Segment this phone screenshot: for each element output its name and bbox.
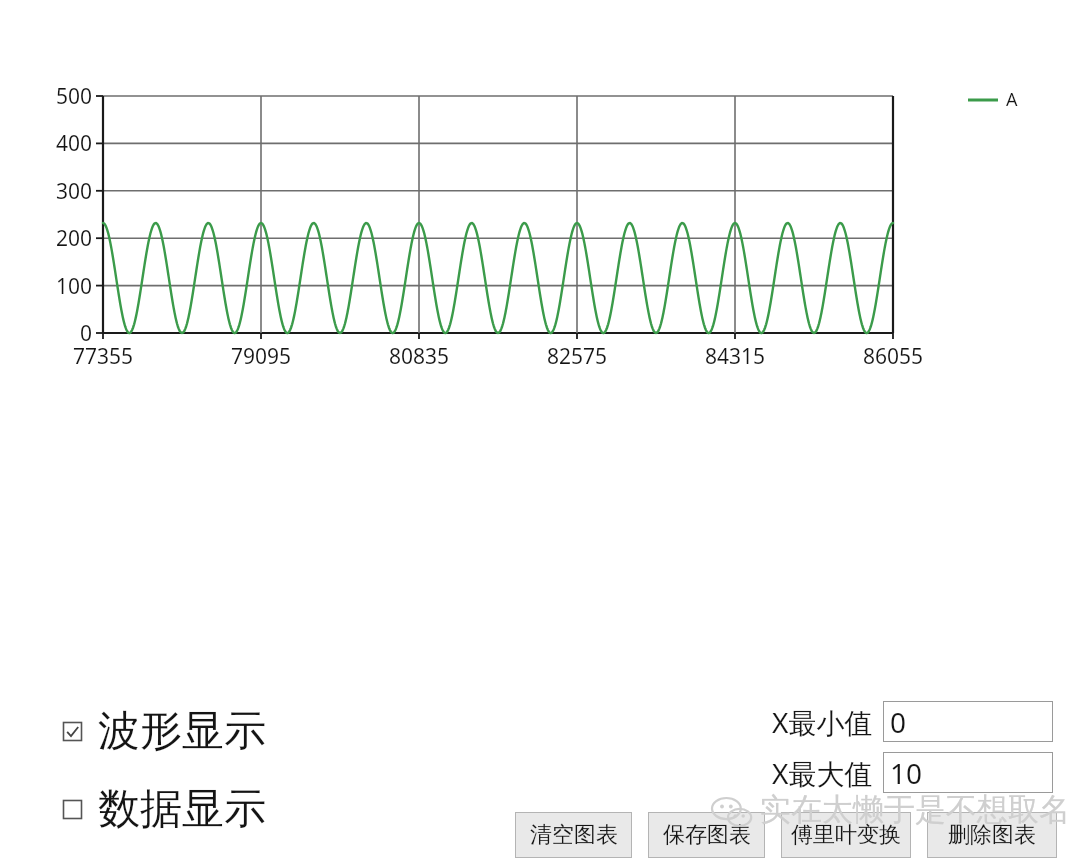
button[interactable]: 傅里叶变换	[781, 812, 911, 858]
staticText: 0	[890, 703, 907, 741]
staticText: X最大值	[772, 754, 873, 792]
staticText: 数据显示	[98, 783, 266, 836]
button[interactable]: 0	[883, 701, 1053, 742]
staticText: 波形显示	[98, 705, 266, 758]
button[interactable]: 保存图表	[648, 812, 765, 858]
staticText: 删除图表	[948, 821, 1036, 849]
staticText: 80835	[359, 342, 479, 371]
staticText: 实在太懒于是不想取名	[760, 790, 1070, 829]
staticText: 77355	[43, 342, 163, 371]
staticText: 300	[26, 177, 92, 206]
staticText: 清空图表	[530, 821, 618, 849]
staticText: 200	[26, 224, 92, 253]
button[interactable]: 波形显示	[63, 705, 266, 758]
staticText: 86055	[833, 342, 953, 371]
button[interactable]: 数据显示	[63, 783, 266, 836]
staticText: X最小值	[772, 703, 873, 741]
staticText: 400	[26, 129, 92, 158]
staticText: 100	[26, 272, 92, 301]
staticText: 0	[26, 319, 92, 348]
staticText: A	[1006, 87, 1018, 112]
staticText: 82575	[517, 342, 637, 371]
staticText: 10	[890, 754, 923, 792]
staticText: 保存图表	[663, 821, 751, 849]
staticText: 500	[26, 82, 92, 111]
button[interactable]: 清空图表	[515, 812, 632, 858]
staticText: 79095	[201, 342, 321, 371]
button[interactable]: 删除图表	[927, 812, 1057, 858]
staticText: 84315	[675, 342, 795, 371]
staticText: 傅里叶变换	[791, 821, 901, 849]
button[interactable]: 10	[883, 752, 1053, 793]
